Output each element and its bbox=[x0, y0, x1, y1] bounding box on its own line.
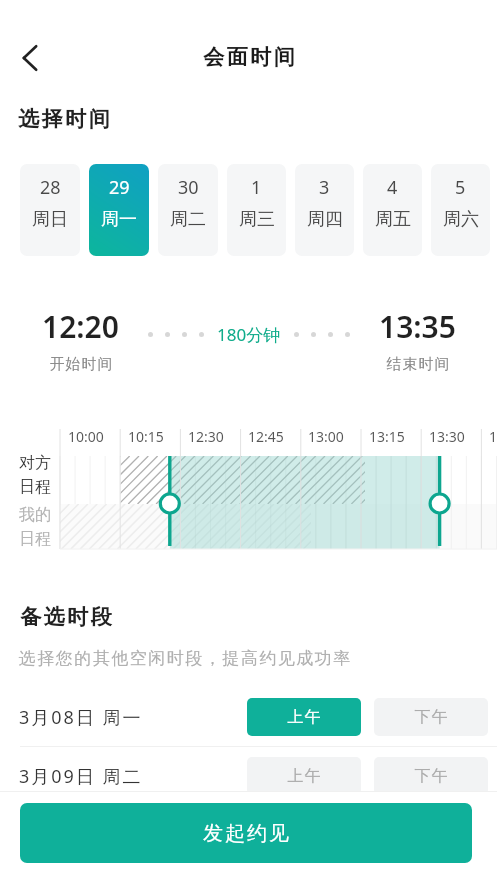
staticText: 选择时间 bbox=[17, 106, 111, 132]
staticText: 上午 bbox=[287, 707, 321, 727]
staticText: 13:35 bbox=[379, 306, 456, 347]
staticText: 3 bbox=[319, 175, 330, 200]
staticText: 周四 bbox=[307, 208, 343, 231]
staticText: 29 bbox=[109, 175, 130, 200]
button[interactable]: 29 bbox=[89, 164, 149, 256]
button[interactable]: 5 bbox=[431, 164, 490, 256]
staticText: 13:15 bbox=[369, 427, 405, 446]
staticText: 周日 bbox=[32, 208, 68, 231]
staticText: 我的 bbox=[19, 505, 51, 525]
staticText: 12:45 bbox=[248, 427, 284, 446]
staticText: 3月08日 周一 bbox=[19, 705, 143, 730]
staticText: 180分钟 bbox=[217, 323, 281, 346]
staticText: 12:30 bbox=[188, 427, 224, 446]
staticText: 发起约见 bbox=[202, 821, 290, 846]
button[interactable]: 发起约见 bbox=[20, 803, 472, 863]
staticText: 会面时间 bbox=[202, 44, 296, 70]
staticText: 5 bbox=[455, 175, 466, 200]
staticText: 周二 bbox=[170, 208, 206, 231]
staticText: 周三 bbox=[239, 208, 275, 231]
button[interactable]: 下午 bbox=[374, 698, 488, 736]
button[interactable]: 4 bbox=[363, 164, 422, 256]
staticText: 4 bbox=[387, 175, 398, 200]
staticText: 周五 bbox=[375, 208, 411, 231]
button[interactable]: 上午 bbox=[247, 757, 361, 795]
staticText: 13:45 bbox=[489, 427, 497, 446]
staticText: 13:30 bbox=[429, 427, 465, 446]
staticText: 下午 bbox=[414, 766, 448, 786]
staticText: 10:15 bbox=[128, 427, 164, 446]
staticText: 日程 bbox=[19, 529, 51, 549]
staticText: 开始时间 bbox=[49, 355, 113, 374]
button[interactable]: 上午 bbox=[247, 698, 361, 736]
staticText: 上午 bbox=[287, 766, 321, 786]
button[interactable]: 1 bbox=[227, 164, 286, 256]
staticText: 周六 bbox=[443, 208, 479, 231]
staticText: 1 bbox=[251, 175, 262, 200]
button[interactable]: 下午 bbox=[374, 757, 488, 795]
staticText: 13:00 bbox=[308, 427, 344, 446]
staticText: 下午 bbox=[414, 707, 448, 727]
staticText: 结束时间 bbox=[386, 355, 450, 374]
staticText: 30 bbox=[178, 175, 199, 200]
staticText: 3月09日 周二 bbox=[19, 764, 143, 789]
staticText: 28 bbox=[40, 175, 61, 200]
button[interactable]: Back bbox=[6, 34, 54, 82]
button[interactable]: 28 bbox=[20, 164, 80, 256]
button[interactable]: 3 bbox=[295, 164, 354, 256]
staticText: 备选时段 bbox=[19, 604, 113, 630]
staticText: 选择您的其他空闲时段，提高约见成功率 bbox=[18, 648, 351, 669]
button[interactable]: 30 bbox=[158, 164, 218, 256]
staticText: 周一 bbox=[101, 208, 137, 231]
staticText: 12:20 bbox=[42, 306, 119, 347]
staticText: 日程 bbox=[19, 477, 51, 497]
staticText: 对方 bbox=[19, 453, 51, 473]
staticText: 10:00 bbox=[68, 427, 104, 446]
